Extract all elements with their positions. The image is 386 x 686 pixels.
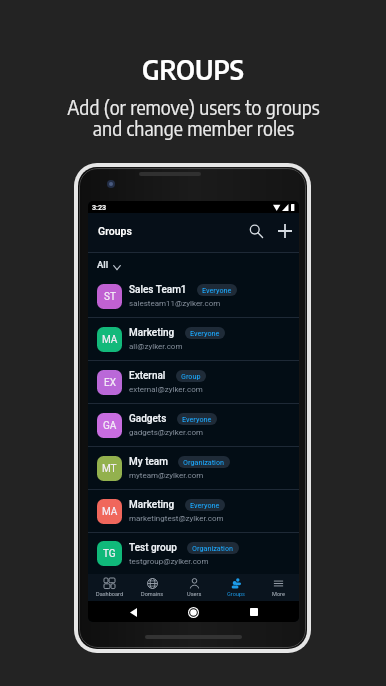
staticText: External xyxy=(129,370,166,382)
staticText: Dashboard xyxy=(96,591,124,598)
staticText: external@zylker.com xyxy=(129,385,203,394)
staticText: Organization xyxy=(192,544,234,552)
staticText: gadgets@zylker.com xyxy=(129,428,204,437)
staticText: marketingtest@zylker.com xyxy=(129,514,224,523)
button[interactable]: Recents xyxy=(245,603,263,621)
staticText: myteam@zylker.com xyxy=(129,471,204,480)
button[interactable]: Add group xyxy=(275,221,294,240)
staticText: Marketing xyxy=(129,499,175,511)
staticText: Everyone xyxy=(182,415,212,423)
button[interactable]: MA xyxy=(88,318,299,360)
staticText: MT xyxy=(102,463,117,475)
staticText: Marketing xyxy=(129,327,175,339)
button[interactable]: MA xyxy=(88,490,299,532)
button[interactable]: Dashboard xyxy=(88,578,131,598)
button[interactable]: Search xyxy=(246,221,265,240)
staticText: GROUPS xyxy=(142,52,244,86)
staticText: Everyone xyxy=(202,286,232,294)
staticText: More xyxy=(272,591,285,598)
button[interactable]: Back xyxy=(124,603,142,621)
staticText: Domains xyxy=(141,591,164,598)
staticText: testgroup@zylker.com xyxy=(129,557,209,566)
staticText: TG xyxy=(103,548,116,560)
staticText: My team xyxy=(129,456,168,468)
button[interactable]: TG xyxy=(88,533,299,574)
button[interactable]: Domains xyxy=(131,578,173,598)
staticText: Groups xyxy=(227,591,245,598)
staticText: Gadgets xyxy=(129,413,167,425)
staticText: All xyxy=(97,259,109,270)
button[interactable]: All xyxy=(96,256,122,273)
button[interactable]: Home xyxy=(184,603,202,621)
staticText: Sales Team1 xyxy=(129,284,187,296)
staticText: Groups xyxy=(98,225,132,237)
button[interactable]: GA xyxy=(88,404,299,446)
staticText: Everyone xyxy=(190,329,220,337)
staticText: MA xyxy=(102,506,118,518)
button[interactable]: Groups xyxy=(215,578,257,598)
staticText: Test group xyxy=(129,542,177,554)
staticText: EX xyxy=(104,377,116,389)
button[interactable]: More xyxy=(257,578,299,598)
button[interactable]: ST xyxy=(88,275,299,317)
staticText: Add (or remove) users to groups and chan… xyxy=(67,95,320,140)
staticText: 3:23 xyxy=(92,203,107,211)
staticText: Organization xyxy=(183,458,225,466)
staticText: Group xyxy=(181,372,201,380)
staticText: MA xyxy=(102,334,118,346)
button[interactable]: MT xyxy=(88,447,299,489)
button[interactable]: Users xyxy=(173,578,215,598)
staticText: Users xyxy=(187,591,202,598)
button[interactable]: EX xyxy=(88,361,299,403)
staticText: salesteam11@zylker.com xyxy=(129,299,221,308)
staticText: Everyone xyxy=(190,501,220,509)
staticText: GA xyxy=(103,420,117,432)
staticText: all@zylker.com xyxy=(129,342,183,351)
staticText: ST xyxy=(104,291,116,303)
